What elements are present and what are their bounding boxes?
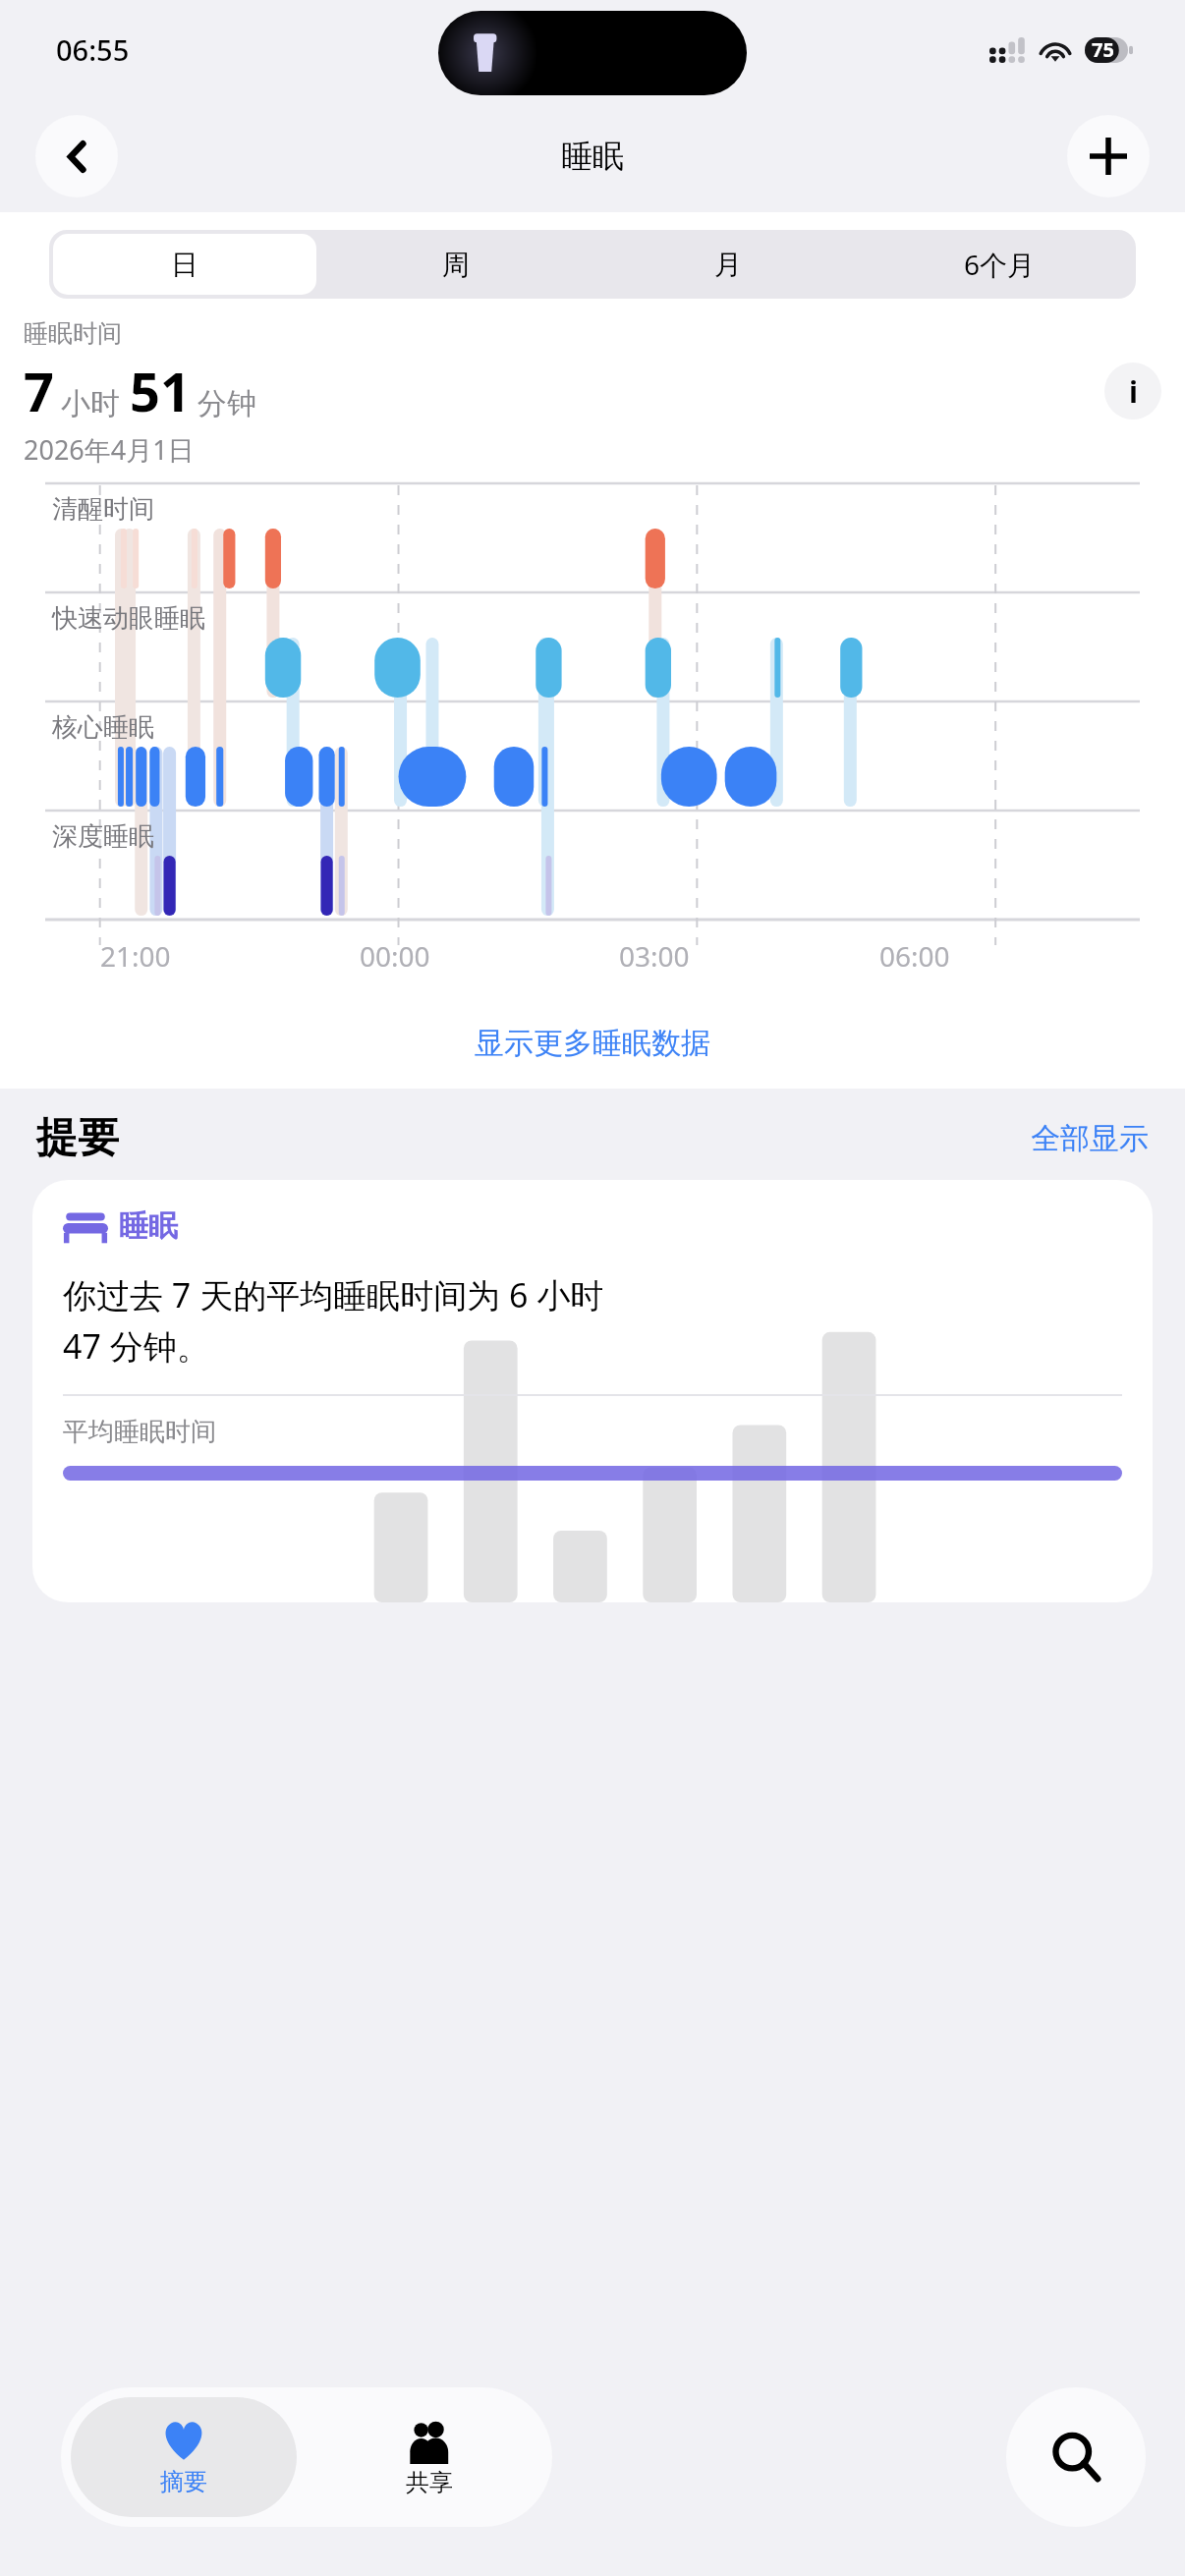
staticText: 睡眠 bbox=[119, 1207, 178, 1245]
staticText: 日 bbox=[171, 248, 198, 282]
staticText: 03:00 bbox=[619, 937, 690, 975]
button[interactable]: 共享 bbox=[307, 2387, 552, 2527]
staticText: 显示更多睡眠数据 bbox=[475, 1025, 710, 1062]
staticText: 分钟 bbox=[197, 385, 256, 422]
button[interactable]: Back bbox=[35, 115, 118, 197]
button[interactable]: 月 bbox=[595, 234, 860, 295]
staticText: 共享 bbox=[406, 2468, 453, 2497]
button[interactable]: 全部显示 bbox=[1031, 1120, 1149, 1157]
button[interactable]: Add bbox=[1067, 115, 1150, 197]
button[interactable]: 显示更多睡眠数据 bbox=[0, 1006, 1185, 1081]
staticText: 睡眠时间 bbox=[24, 318, 122, 349]
button[interactable]: 睡眠 bbox=[32, 1180, 1153, 1602]
staticText: 全部显示 bbox=[1031, 1120, 1149, 1157]
staticText: 提要 bbox=[36, 1112, 1031, 1164]
button[interactable]: 6个月 bbox=[868, 234, 1132, 295]
staticText: 2026年4月1日 bbox=[24, 431, 195, 468]
staticText: i bbox=[1129, 371, 1138, 412]
staticText: 51 bbox=[130, 355, 191, 427]
staticText: 快速动眼睡眠 bbox=[52, 602, 205, 635]
staticText: 6个月 bbox=[964, 246, 1036, 283]
staticText: 06:00 bbox=[879, 937, 950, 975]
staticText: 清醒时间 bbox=[52, 493, 154, 526]
staticText: 深度睡眠 bbox=[52, 820, 154, 853]
staticText: 06:55 bbox=[56, 30, 130, 69]
staticText: 75 bbox=[1092, 36, 1114, 63]
button[interactable]: Info bbox=[1104, 363, 1161, 420]
staticText: 小时 bbox=[61, 385, 120, 422]
button[interactable]: 周 bbox=[324, 234, 588, 295]
staticText: 摘要 bbox=[160, 2467, 207, 2496]
button[interactable]: Search bbox=[1006, 2387, 1146, 2527]
staticText: 你过去 7 天的平均睡眠时间为 6 小时 47 分钟。 bbox=[63, 1272, 604, 1369]
staticText: 7 bbox=[24, 355, 54, 427]
staticText: 平均睡眠时间 bbox=[63, 1416, 216, 1448]
staticText: 睡眠 bbox=[561, 137, 624, 176]
staticText: 00:00 bbox=[360, 937, 430, 975]
button[interactable]: 摘要 bbox=[71, 2397, 297, 2517]
staticText: 月 bbox=[714, 248, 742, 282]
button[interactable]: 日 bbox=[53, 234, 316, 295]
staticText: 21:00 bbox=[100, 937, 171, 975]
staticText: 周 bbox=[442, 248, 470, 282]
staticText: 核心睡眠 bbox=[52, 711, 154, 744]
